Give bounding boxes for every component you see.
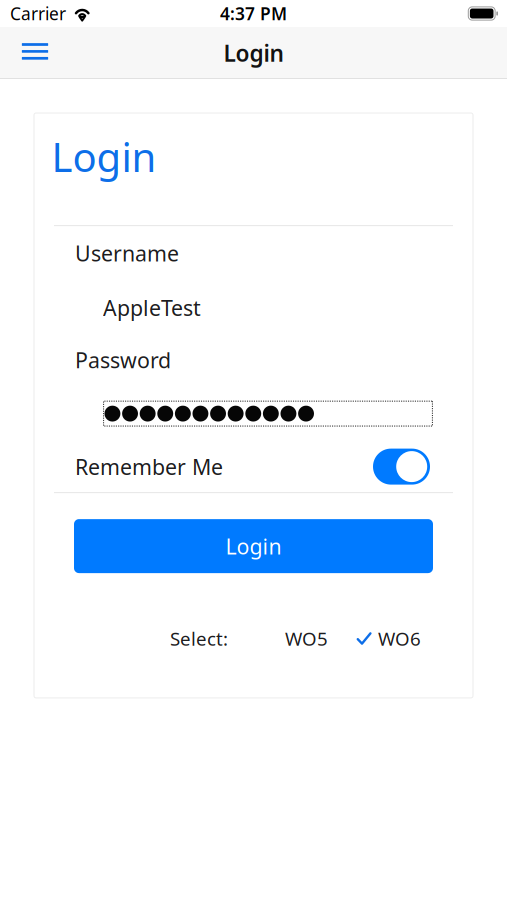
staticText: AppleTest [103, 293, 201, 322]
button[interactable]: WO5 [285, 626, 328, 651]
button[interactable]: Remember Me [373, 449, 430, 485]
staticText: 4:37 PM [220, 2, 287, 25]
staticText: Remember Me [75, 452, 223, 481]
button[interactable]: Menu [11, 31, 59, 75]
staticText: Login [223, 38, 283, 68]
button[interactable]: Login [74, 519, 433, 573]
staticText: WO6 [378, 626, 421, 651]
button[interactable]: WO6 [357, 626, 421, 651]
staticText: Login [51, 130, 156, 183]
staticText: Username [75, 239, 179, 267]
staticText: Password [75, 346, 171, 374]
staticText: Carrier [10, 2, 66, 25]
staticText: WO5 [285, 626, 328, 651]
staticText: Login [225, 532, 281, 560]
staticText: Select: [170, 626, 228, 651]
